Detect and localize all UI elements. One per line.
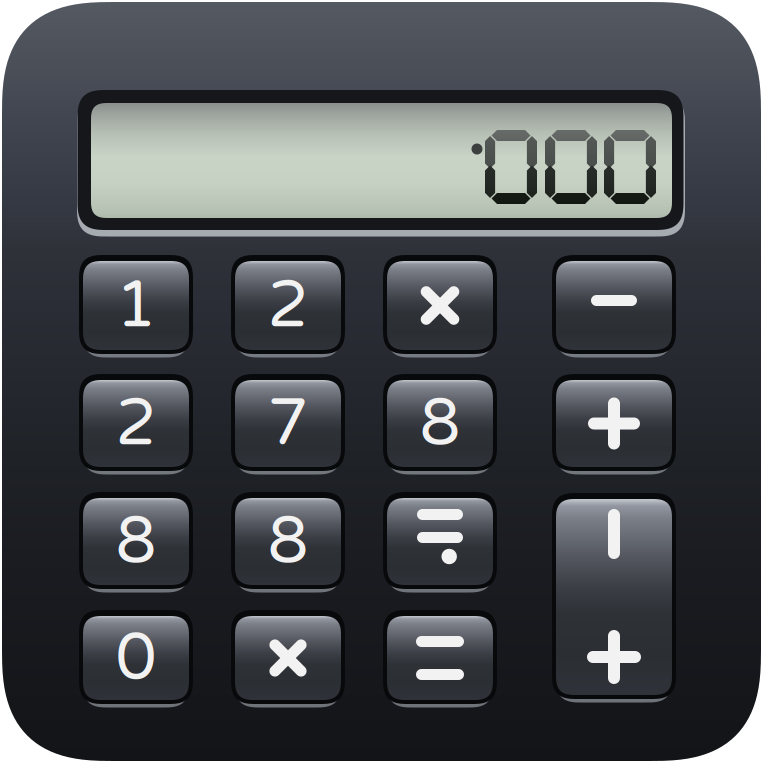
staticText: 2 — [115, 384, 156, 463]
button[interactable]: Add — [552, 493, 676, 699]
button[interactable]: 8 — [383, 374, 497, 471]
button[interactable]: Multiply — [383, 255, 497, 354]
button[interactable]: Plus — [552, 374, 676, 471]
button[interactable]: 2 — [231, 255, 345, 354]
button[interactable]: Minus — [552, 255, 676, 354]
staticText: 7 — [267, 384, 308, 463]
staticText: 0 — [115, 619, 156, 697]
staticText: 2 — [267, 266, 308, 345]
button[interactable]: Divide — [383, 492, 497, 589]
button[interactable]: 8 — [79, 492, 193, 589]
button[interactable]: 2 — [79, 374, 193, 471]
staticText: 8 — [115, 502, 156, 581]
staticText: 8 — [419, 384, 460, 463]
button[interactable]: 8 — [231, 492, 345, 589]
button[interactable]: Multiply — [231, 610, 345, 704]
button[interactable]: 0 — [79, 610, 193, 704]
staticText: 1 — [115, 266, 156, 345]
staticText: 8 — [267, 502, 308, 581]
button[interactable]: 1 — [79, 255, 193, 354]
button[interactable]: 7 — [231, 374, 345, 471]
button[interactable]: Equals — [383, 610, 497, 704]
